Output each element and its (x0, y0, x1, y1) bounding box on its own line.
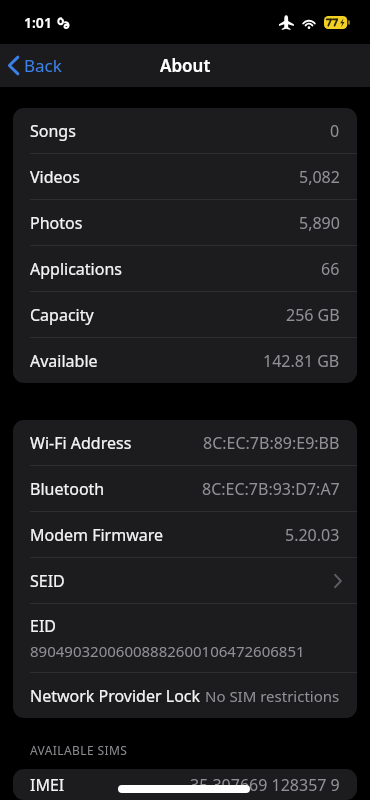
staticText: AVAILABLE SIMS (30, 742, 128, 758)
button[interactable]: Capacity (13, 292, 357, 337)
staticText: Available (30, 350, 98, 372)
staticText: 5.20.03 (285, 524, 340, 546)
button[interactable]: Photos (13, 200, 357, 245)
staticText: Applications (30, 258, 122, 280)
button[interactable]: Available (13, 338, 357, 383)
staticText: SEID (30, 570, 65, 592)
button[interactable]: Network Provider Lock (13, 673, 357, 718)
button[interactable]: EID (13, 604, 357, 672)
staticText: Network Provider Lock (30, 685, 201, 707)
staticText: Videos (30, 166, 80, 188)
other: Open SEID (334, 574, 342, 588)
staticText: About (160, 54, 211, 77)
staticText: Bluetooth (30, 478, 105, 500)
button[interactable]: Songs (13, 108, 357, 153)
staticText: Capacity (30, 304, 94, 326)
staticText: Wi-Fi Address (30, 432, 132, 454)
button[interactable]: Modem Firmware (13, 512, 357, 557)
button[interactable]: SEID (13, 558, 357, 603)
staticText: 142.81 GB (263, 350, 340, 372)
staticText: EID (30, 615, 57, 637)
staticText: 66 (321, 258, 340, 280)
button[interactable]: IMEI (13, 769, 357, 800)
staticText: Songs (30, 120, 76, 142)
staticText: 0 (330, 120, 340, 142)
staticText: 5,082 (299, 166, 340, 188)
staticText: Modem Firmware (30, 524, 164, 546)
button[interactable]: Bluetooth (13, 466, 357, 511)
staticText: 35 307669 128357 9 (190, 774, 340, 796)
staticText: 1:01 (24, 13, 52, 32)
staticText: 89049032006008882600106472606851 (30, 641, 305, 661)
staticText: Back (24, 54, 62, 77)
staticText: 5,890 (299, 212, 340, 234)
button[interactable]: Wi-Fi Address (13, 420, 357, 465)
button[interactable]: Back (0, 48, 76, 83)
staticText: 8C:EC:7B:93:D7:A7 (202, 478, 340, 500)
staticText: No SIM restrictions (205, 686, 340, 706)
staticText: 8C:EC:7B:89:E9:BB (203, 432, 340, 454)
staticText: IMEI (30, 774, 65, 796)
staticText: 256 GB (286, 304, 340, 326)
button[interactable]: Applications (13, 246, 357, 291)
button[interactable]: Videos (13, 154, 357, 199)
staticText: Photos (30, 212, 83, 234)
